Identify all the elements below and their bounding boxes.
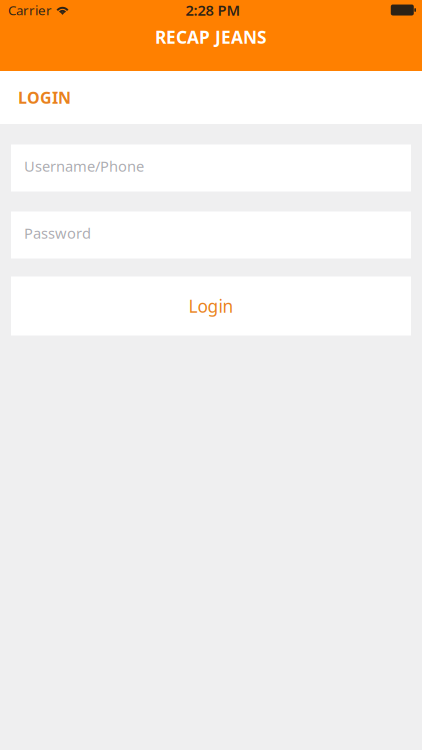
staticText: RECAP JEANS xyxy=(155,25,267,48)
button[interactable]: Username/Phone xyxy=(11,144,411,191)
staticText: Login xyxy=(188,294,233,317)
staticText: Password xyxy=(24,223,91,243)
staticText: LOGIN xyxy=(18,87,71,108)
staticText: Username/Phone xyxy=(24,156,144,176)
button[interactable]: Password xyxy=(11,211,411,258)
button[interactable]: Login xyxy=(11,276,411,335)
staticText: 2:28 PM xyxy=(185,0,240,20)
staticText: Carrier xyxy=(8,1,52,19)
